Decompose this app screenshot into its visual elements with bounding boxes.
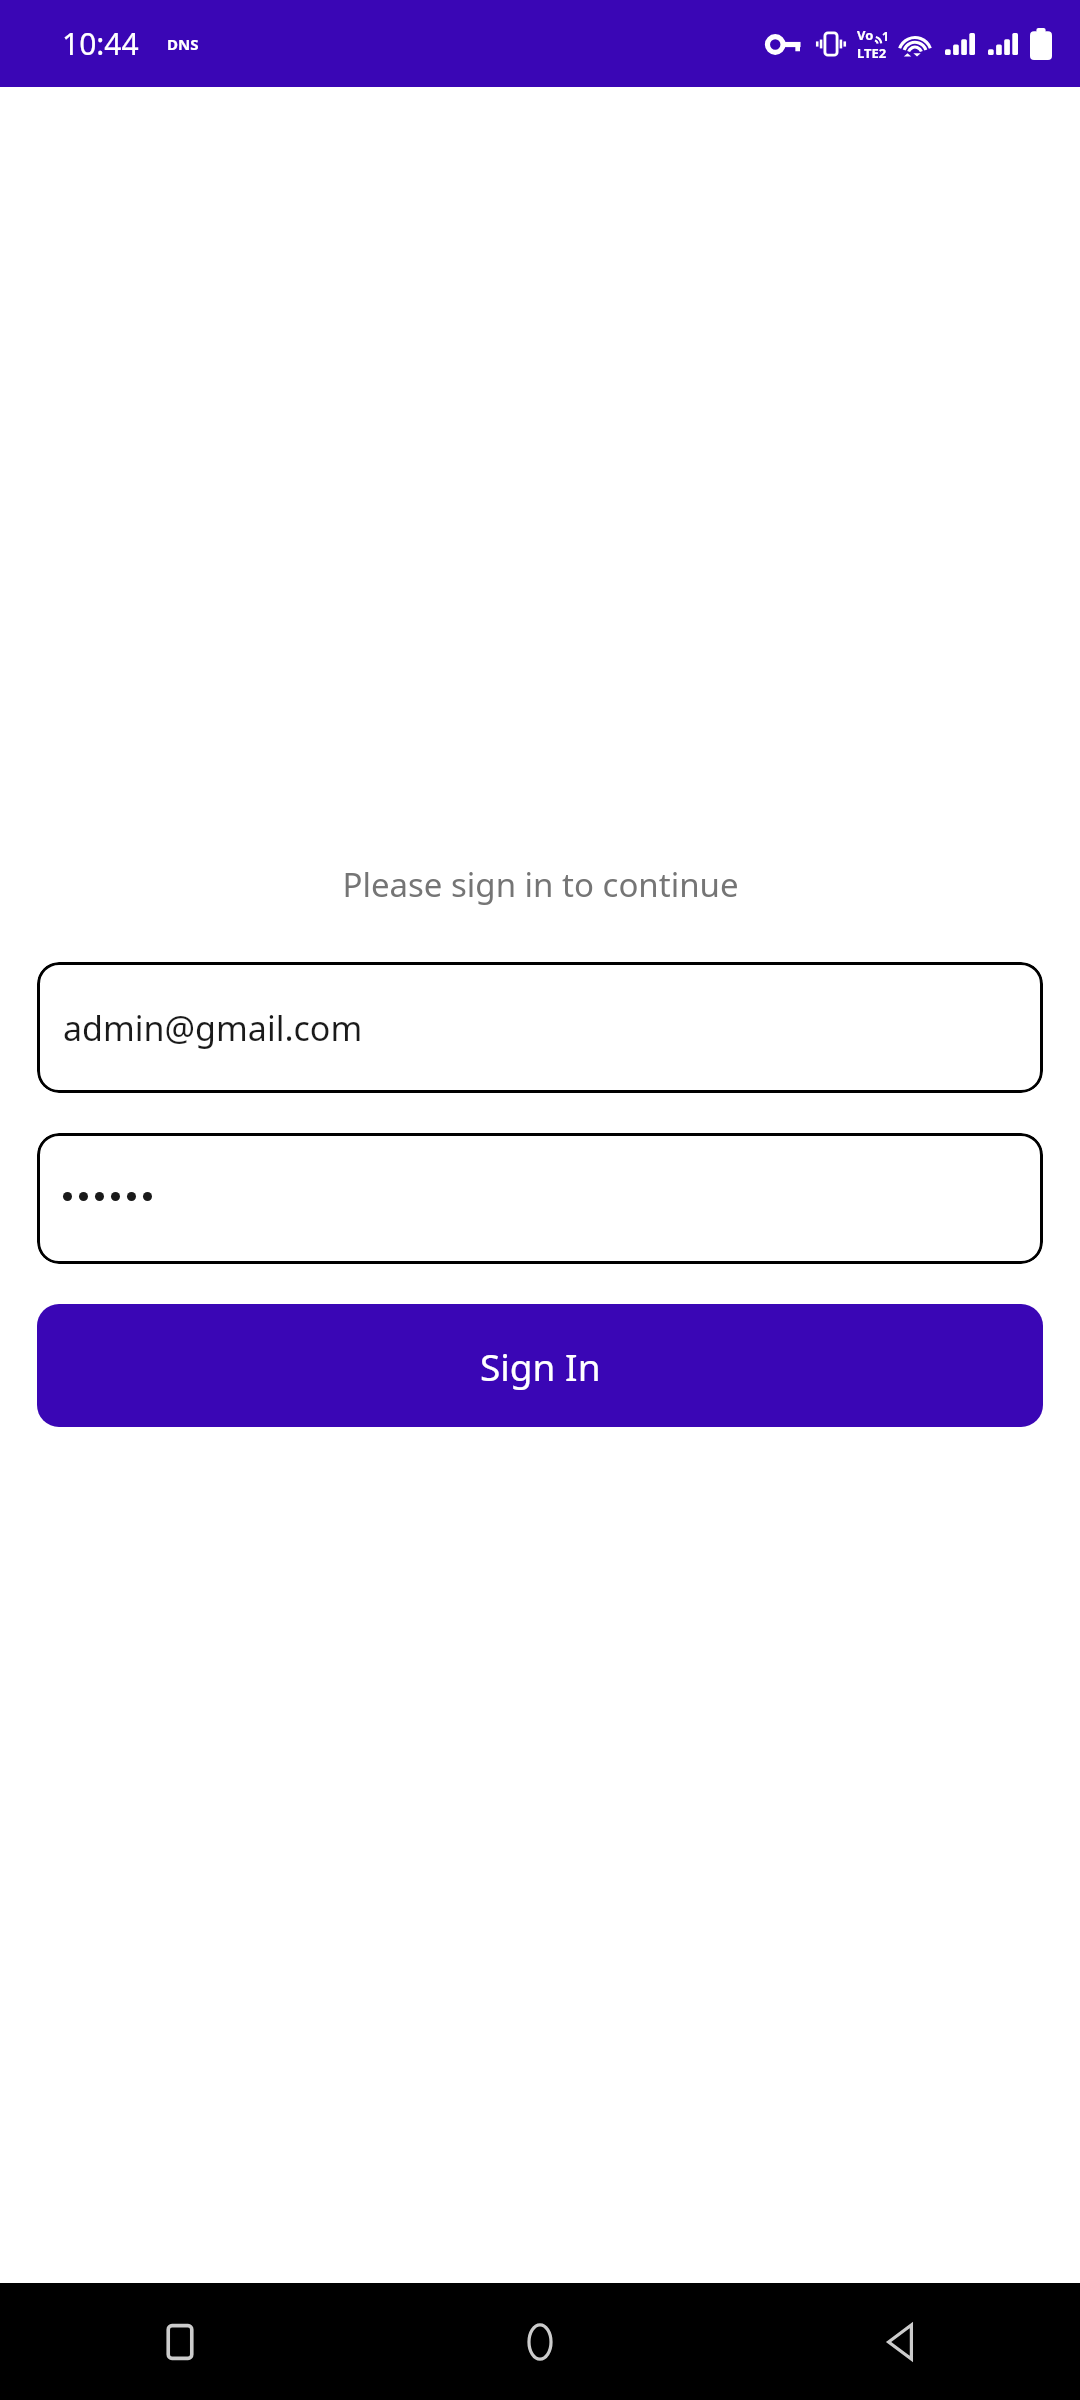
staticText: Please sign in to continue [342,862,739,907]
button[interactable]: Password field [37,1133,1043,1264]
staticText: Sign In [480,1341,601,1391]
button[interactable]: Recent apps [0,2283,360,2400]
staticText: DNS [167,34,199,54]
staticText: 10:44 [62,23,139,64]
staticText: Vo [857,26,874,44]
button[interactable]: Home [360,2283,720,2400]
button[interactable]: Back [720,2283,1080,2400]
staticText: admin@gmail.com [63,1005,363,1051]
button[interactable]: Email address field [37,962,1043,1093]
staticText: 1 [882,28,889,44]
button[interactable]: Sign In [37,1304,1043,1427]
staticText: LTE2 [857,44,887,62]
